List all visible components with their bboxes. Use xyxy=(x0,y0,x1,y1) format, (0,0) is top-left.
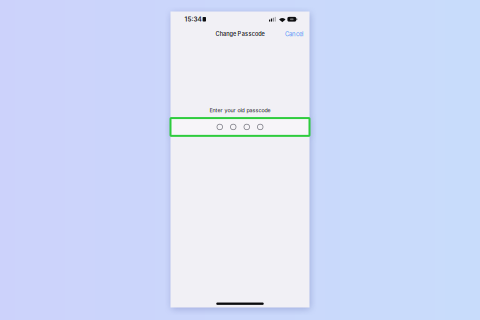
staticText: 15:34 xyxy=(184,15,201,23)
staticText: Cancel xyxy=(285,30,303,38)
button[interactable]: Cancel xyxy=(283,28,305,40)
button[interactable]: Passcode entry field xyxy=(170,118,309,136)
staticText: Change Passcode xyxy=(215,31,265,37)
staticText: Enter your old passcode xyxy=(209,107,270,113)
